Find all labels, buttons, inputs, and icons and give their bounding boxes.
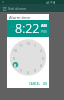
staticText: 4 bbox=[40, 63, 42, 68]
button[interactable]: 7 bbox=[16, 67, 26, 73]
button[interactable]: PM bbox=[41, 29, 47, 34]
staticText: 7 bbox=[20, 68, 22, 73]
button[interactable]: 3 bbox=[38, 55, 48, 61]
button[interactable]: 11 bbox=[16, 42, 26, 48]
staticText: 5 bbox=[34, 68, 36, 73]
button[interactable]: 8:22 bbox=[15, 20, 40, 37]
button[interactable]: 6 bbox=[23, 69, 33, 75]
button[interactable]: 9 bbox=[9, 55, 19, 61]
staticText: 6 bbox=[27, 70, 29, 75]
staticText: 8 bbox=[14, 63, 16, 68]
button[interactable]: Navigate up bbox=[0, 4, 8, 12]
staticText: Set alarm bbox=[8, 6, 27, 11]
button[interactable]: 1 bbox=[30, 42, 40, 48]
button[interactable]: 5 bbox=[30, 67, 40, 73]
button[interactable]: 8 bbox=[10, 62, 20, 68]
staticText: 3 bbox=[42, 56, 44, 61]
button[interactable]: 12 bbox=[23, 40, 33, 46]
button[interactable]: 2 bbox=[36, 47, 46, 53]
staticText: 2 bbox=[40, 48, 42, 53]
staticText: 1 bbox=[34, 43, 36, 48]
staticText: 10 bbox=[13, 48, 17, 53]
button[interactable]: OK bbox=[41, 82, 49, 86]
staticText: 12 bbox=[26, 41, 30, 46]
staticText: Alarm time bbox=[9, 15, 31, 20]
button[interactable]: 10 bbox=[10, 47, 20, 53]
button[interactable]: CANCEL bbox=[28, 82, 41, 86]
button[interactable]: 4 bbox=[36, 62, 46, 68]
button[interactable]: AM bbox=[41, 23, 47, 28]
staticText: 9 bbox=[13, 56, 15, 61]
staticText: 11 bbox=[19, 43, 23, 48]
